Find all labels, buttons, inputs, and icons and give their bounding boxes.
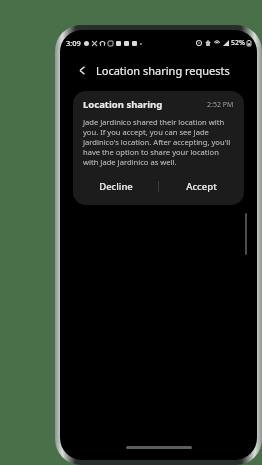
staticText: Jade Jardinico shared their location wit…	[83, 117, 234, 167]
button[interactable]: Location sharing	[73, 91, 244, 205]
staticText: Location sharing requests	[96, 63, 230, 78]
button[interactable]: Accept	[159, 176, 244, 196]
button[interactable]: Back	[74, 62, 90, 78]
staticText: Accept	[186, 180, 217, 193]
staticText: 3:09	[66, 38, 81, 48]
button[interactable]: Decline	[73, 176, 158, 196]
staticText: Location sharing	[83, 98, 163, 111]
staticText: 52%	[231, 38, 245, 48]
staticText: Decline	[99, 180, 133, 193]
staticText: 2:52 PM	[207, 100, 234, 110]
